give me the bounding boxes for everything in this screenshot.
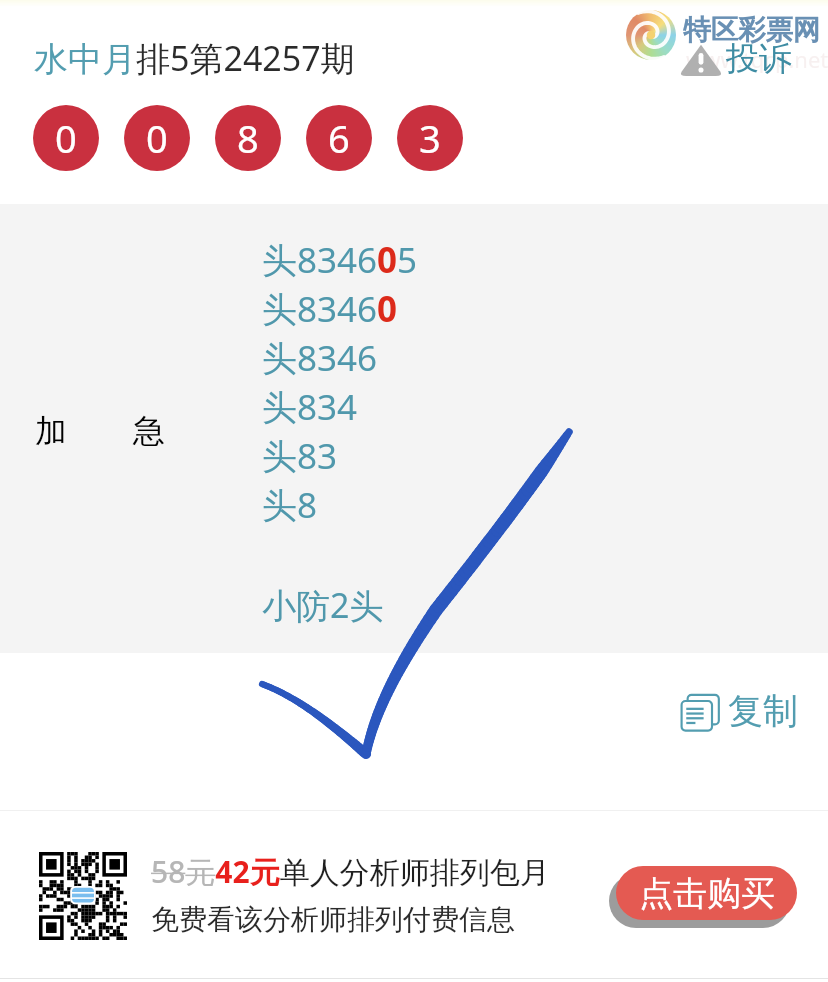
staticText: 0 xyxy=(146,112,168,164)
staticText: 加 xyxy=(35,411,67,451)
staticText: 0 xyxy=(55,112,77,164)
staticText: 特区彩票网 xyxy=(683,13,821,48)
button[interactable]: 0 xyxy=(33,105,99,171)
button[interactable]: 头834 xyxy=(262,383,358,432)
staticText: 复制 xyxy=(728,689,798,733)
staticText: 小防2头 xyxy=(262,582,384,628)
button[interactable]: 头83 xyxy=(262,432,338,481)
staticText: www.tqcp.net xyxy=(686,44,828,74)
button[interactable]: 8 xyxy=(215,105,281,171)
button[interactable]: 3 xyxy=(397,105,463,171)
staticText: 头834605 xyxy=(262,236,418,284)
staticText: 头83460 xyxy=(262,285,398,333)
button[interactable]: 头8346 xyxy=(262,334,378,383)
button[interactable]: 小防2头 xyxy=(262,582,384,631)
staticText: 58元42元单人分析师排列包月 xyxy=(151,851,550,892)
staticText: 头8346 xyxy=(262,334,378,382)
button[interactable]: 头83460 xyxy=(262,285,398,334)
button[interactable]: 点击购买 xyxy=(616,866,797,920)
staticText: 头8 xyxy=(262,481,318,529)
staticText: 3 xyxy=(419,112,441,164)
button[interactable]: 0 xyxy=(124,105,190,171)
staticText: 投诉 xyxy=(726,38,792,80)
button[interactable]: 头8 xyxy=(262,481,318,530)
staticText: 免费看该分析师排列付费信息 xyxy=(151,902,515,937)
button[interactable]: 6 xyxy=(306,105,372,171)
button[interactable]: 复制 xyxy=(681,689,798,733)
staticText: 头834 xyxy=(262,383,358,431)
button[interactable]: 头834605 xyxy=(262,236,418,285)
staticText: 水中月排5第24257期 xyxy=(34,35,355,81)
staticText: 8 xyxy=(237,112,259,164)
button[interactable]: 投诉 xyxy=(679,38,792,80)
staticText: 急 xyxy=(133,411,165,451)
other: 投诉 xyxy=(679,43,723,76)
staticText: 6 xyxy=(328,112,350,164)
staticText: 头83 xyxy=(262,432,338,480)
staticText: 点击购买 xyxy=(639,872,775,915)
